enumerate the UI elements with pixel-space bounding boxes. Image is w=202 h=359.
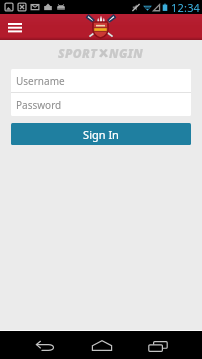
button[interactable]: Username <box>11 69 191 92</box>
staticText: SPORT <box>58 45 98 61</box>
staticText: Sign In <box>83 127 119 142</box>
button[interactable]: Password <box>11 93 191 116</box>
button[interactable]: Home <box>86 337 118 354</box>
button[interactable]: Open navigation menu <box>4 16 26 38</box>
button[interactable]: Sign In <box>11 123 191 145</box>
button[interactable]: Back <box>30 337 62 354</box>
staticText: Password <box>16 98 62 112</box>
staticText: Username <box>16 74 65 88</box>
staticText: NGIN <box>109 45 144 61</box>
staticText: 12:34 <box>171 0 201 14</box>
button[interactable]: Recent apps <box>142 338 174 355</box>
